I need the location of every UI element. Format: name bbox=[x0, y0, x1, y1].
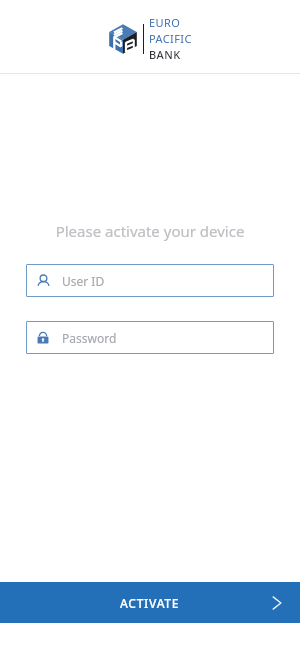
staticText: EURO bbox=[149, 15, 181, 30]
staticText: Password bbox=[62, 330, 117, 346]
button[interactable]: Password bbox=[26, 321, 274, 354]
staticText: User ID bbox=[62, 273, 105, 289]
staticText: BANK bbox=[149, 47, 181, 62]
button[interactable]: ACTIVATE bbox=[0, 582, 300, 623]
staticText: PACIFIC bbox=[149, 31, 192, 46]
staticText: ACTIVATE bbox=[120, 595, 180, 611]
button[interactable]: User ID bbox=[26, 264, 274, 297]
staticText: Please activate your device bbox=[0, 221, 300, 241]
